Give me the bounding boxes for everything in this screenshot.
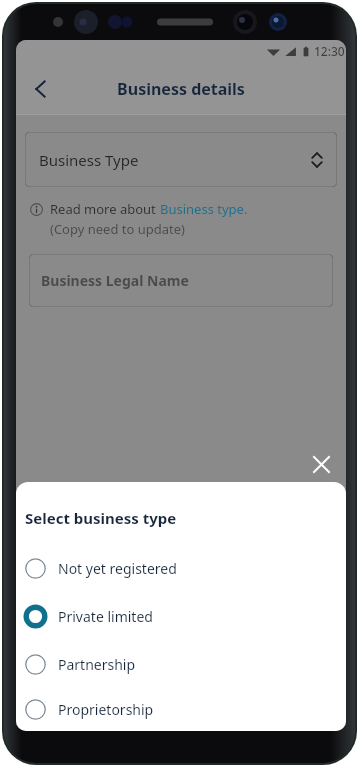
staticText: Business details — [117, 78, 245, 100]
staticText: Proprietorship — [58, 700, 154, 719]
staticText: Partnership — [58, 655, 136, 674]
staticText: Read more about — [50, 200, 160, 218]
button[interactable]: Close — [301, 444, 341, 484]
staticText: Business Legal Name — [41, 271, 189, 290]
button[interactable]: Not yet registered — [16, 544, 346, 592]
staticText: Not yet registered — [58, 559, 177, 578]
button[interactable]: Business Type — [25, 132, 337, 187]
staticText: Select business type — [25, 508, 177, 528]
staticText: Private limited — [58, 607, 153, 626]
button[interactable]: Partnership — [16, 640, 346, 688]
staticText: Business Type — [39, 150, 139, 170]
button[interactable]: Private limited — [16, 592, 346, 640]
button[interactable]: Business Legal Name — [29, 254, 333, 307]
button[interactable]: Proprietorship — [16, 688, 346, 731]
staticText: (Copy need to update) — [50, 220, 185, 238]
button[interactable]: Back — [21, 69, 61, 109]
button[interactable]: Business type. — [160, 200, 248, 218]
staticText: 12:30 — [314, 43, 345, 59]
